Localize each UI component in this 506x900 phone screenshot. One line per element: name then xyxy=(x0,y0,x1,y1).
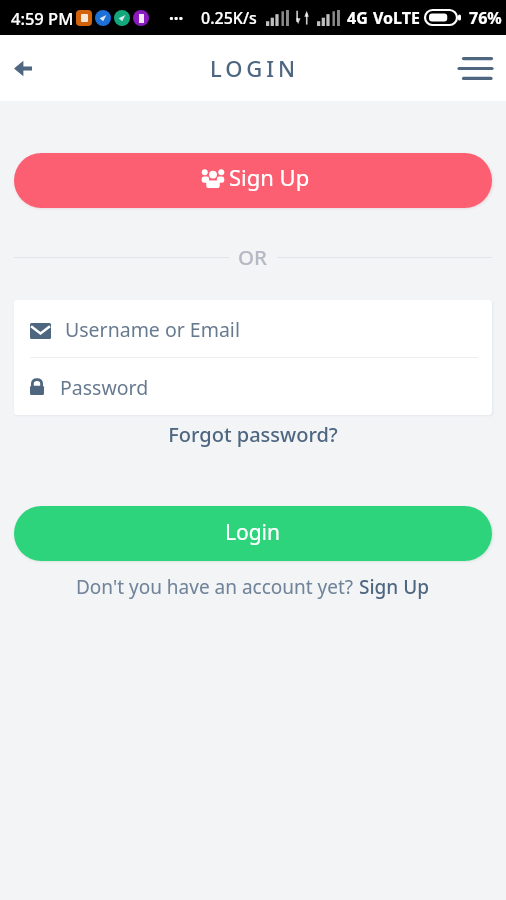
staticText: ... xyxy=(169,2,184,25)
button[interactable]: Login xyxy=(14,506,492,561)
button[interactable]: Sign Up xyxy=(14,153,492,208)
button[interactable]: Username or Email xyxy=(14,300,492,357)
button[interactable]: Forgot password? xyxy=(0,418,506,451)
staticText: 0.25K/s xyxy=(201,7,257,29)
staticText: OR xyxy=(238,243,268,271)
staticText: 76% xyxy=(469,7,502,29)
staticText: Username or Email xyxy=(65,316,240,343)
button[interactable]: Sign Up xyxy=(359,574,430,600)
staticText: Password xyxy=(60,374,149,401)
staticText: Don't you have an account yet? xyxy=(76,574,359,600)
button[interactable]: Menu xyxy=(453,46,497,90)
staticText: Sign Up xyxy=(229,162,310,192)
staticText: 4:59 PM xyxy=(11,7,74,29)
staticText: LOGIN xyxy=(210,53,299,83)
button[interactable]: Back xyxy=(1,46,45,90)
staticText: 4G xyxy=(347,7,368,29)
staticText: Login xyxy=(225,518,281,547)
button[interactable]: Password xyxy=(14,358,492,415)
staticText: VoLTE xyxy=(373,7,420,29)
